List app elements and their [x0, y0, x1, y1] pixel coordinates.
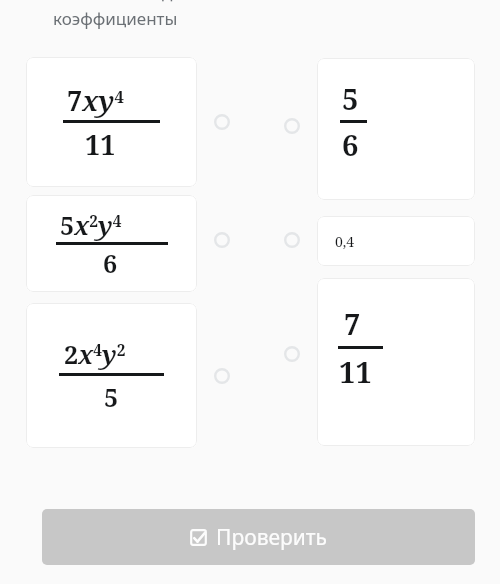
button[interactable]: Select option 1 right: [279, 113, 305, 139]
button[interactable]: Проверить: [42, 509, 475, 565]
button[interactable]: 2x4y2: [26, 303, 197, 448]
staticText: 5x2y4: [60, 208, 122, 242]
button[interactable]: 7xy4: [26, 57, 197, 187]
staticText: 11: [85, 126, 116, 163]
staticText: Соотнесите одночлены и их коэффициенты: [53, 0, 285, 29]
button[interactable]: Select option 3 right: [279, 341, 305, 367]
staticText: 5: [342, 79, 359, 118]
staticText: 6: [342, 125, 359, 164]
staticText: 11: [339, 352, 372, 391]
button[interactable]: Select option 3 left: [209, 363, 235, 389]
button[interactable]: 5x2y4: [26, 195, 197, 292]
staticText: 2x4y2: [64, 337, 126, 371]
button[interactable]: Select option 1 left: [209, 109, 235, 135]
button[interactable]: 7: [317, 278, 475, 446]
staticText: 7: [344, 304, 361, 343]
button[interactable]: 0,4: [317, 216, 475, 266]
staticText: 7xy4: [67, 82, 124, 119]
button[interactable]: Select option 2 right: [279, 227, 305, 253]
staticText: Проверить: [216, 523, 328, 552]
staticText: 5: [104, 380, 119, 414]
button[interactable]: 5: [317, 58, 475, 200]
button[interactable]: Select option 2 left: [209, 227, 235, 253]
staticText: 0,4: [335, 232, 355, 251]
staticText: 6: [103, 246, 118, 280]
